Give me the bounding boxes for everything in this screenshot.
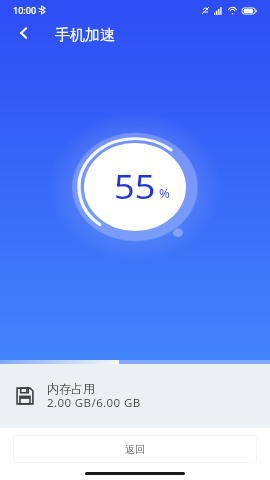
button[interactable]: Back [12, 21, 36, 45]
button[interactable]: 返回 [13, 435, 257, 463]
staticText: 55 [114, 163, 156, 209]
staticText: 10:00 [13, 4, 37, 16]
staticText: 内存占用 [47, 381, 95, 396]
staticText: % [159, 184, 170, 202]
staticText: 2.00 GB/6.00 GB [47, 395, 141, 411]
staticText: 手机加速 [55, 26, 115, 45]
staticText: 返回 [125, 443, 145, 456]
